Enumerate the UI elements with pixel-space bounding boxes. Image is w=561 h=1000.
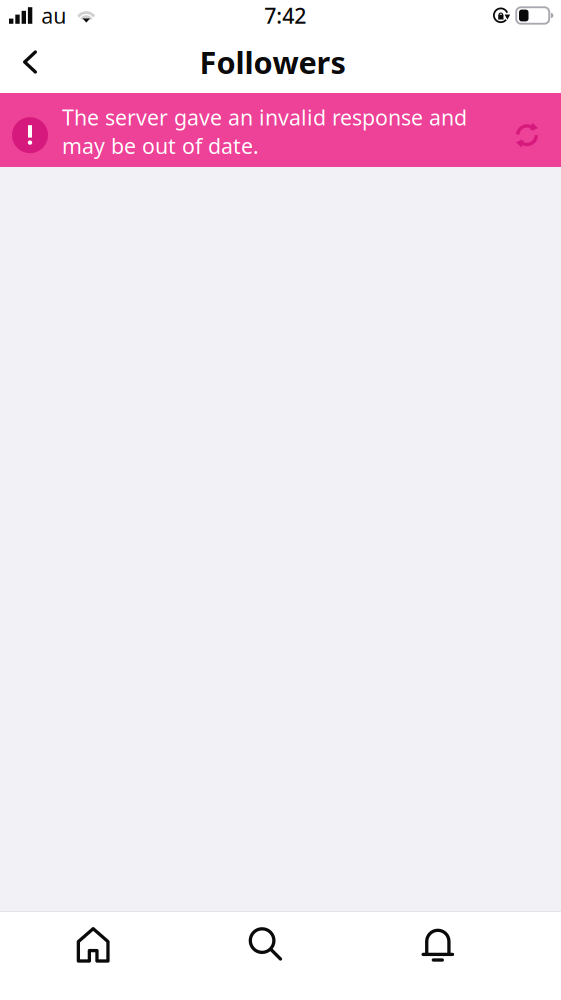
staticText: au (41, 1, 66, 30)
button[interactable]: Retry (505, 113, 549, 157)
button[interactable]: Home (7, 926, 179, 964)
staticText: 7:42 (264, 1, 306, 30)
staticText: The server gave an invalid response and … (62, 103, 467, 160)
staticText: Followers (199, 42, 345, 82)
button[interactable]: Search (179, 926, 352, 964)
button[interactable]: Back (6, 38, 54, 86)
button[interactable]: Notifications (352, 926, 524, 964)
